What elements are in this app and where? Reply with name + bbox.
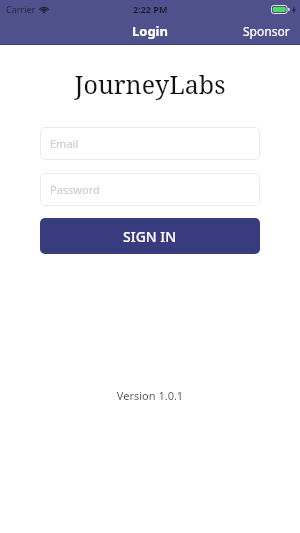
staticText: Sponsor — [243, 23, 290, 39]
button[interactable]: Email — [40, 127, 260, 160]
button[interactable]: Sponsor — [233, 19, 300, 43]
staticText: Carrier — [6, 3, 36, 15]
staticText: JourneyLabs — [0, 67, 300, 101]
other: Wi-Fi signal — [39, 5, 49, 13]
staticText: Version 1.0.1 — [0, 388, 300, 403]
staticText: Login — [132, 22, 168, 40]
button[interactable]: Password — [40, 173, 260, 206]
other: Battery charging — [271, 5, 290, 14]
staticText: 2:22 PM — [133, 3, 168, 15]
staticText: Password — [50, 182, 100, 197]
button[interactable]: SIGN IN — [40, 218, 260, 254]
staticText: SIGN IN — [123, 227, 177, 246]
staticText: Email — [50, 136, 79, 151]
